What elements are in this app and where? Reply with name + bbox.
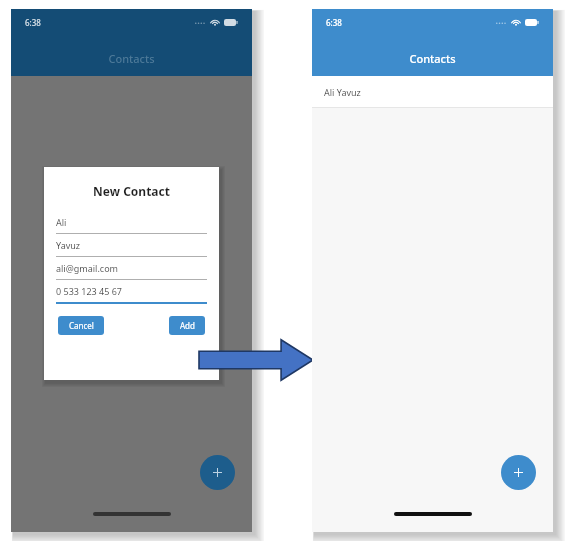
button[interactable]: Add contact	[501, 455, 536, 490]
staticText: Yavuz	[56, 239, 81, 251]
staticText: 0 533 123 45 67	[56, 285, 122, 297]
staticText: 6:38	[326, 17, 342, 28]
staticText: Contacts	[108, 51, 155, 66]
staticText: Ali Yavuz	[324, 86, 361, 98]
staticText: Add	[180, 320, 195, 331]
staticText: Cancel	[69, 320, 94, 331]
staticText: ali@gmail.com	[56, 262, 119, 274]
button[interactable]: Add contact	[200, 455, 235, 490]
staticText: Ali	[56, 216, 67, 228]
button[interactable]: Cancel	[58, 316, 104, 335]
button[interactable]: Ali Yavuz	[312, 76, 553, 107]
staticText: New Contact	[44, 183, 219, 199]
button[interactable]: Add	[169, 316, 205, 335]
staticText: 6:38	[25, 17, 41, 28]
staticText: Contacts	[409, 51, 456, 66]
